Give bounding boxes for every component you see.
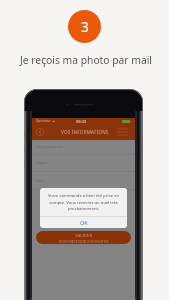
staticText: Votre commande a bien été prise en compt… [44, 193, 123, 211]
staticText: Je reçois ma photo par mail [20, 53, 152, 67]
staticText: 09:23 [76, 119, 87, 124]
button[interactable]: VALIDER [36, 231, 131, 244]
staticText: VALIDER [75, 232, 93, 238]
staticText: Dupont [36, 161, 47, 165]
button[interactable]: Memo [32, 172, 135, 190]
staticText: Memo [36, 179, 45, 183]
staticText: POUR RECEVOIR VOS PHOTOS [59, 239, 109, 244]
staticText: VOS INFORMATIONS [61, 129, 109, 135]
button[interactable]: Retour [36, 128, 44, 136]
staticText: OK [80, 219, 88, 226]
button[interactable]: OK [40, 217, 127, 228]
staticText: dupont@gmail.com [36, 145, 63, 149]
button[interactable]: 3 [68, 10, 101, 43]
staticText: 3 [81, 18, 89, 36]
button[interactable]: Menu [117, 128, 128, 136]
staticText: Opérateur [36, 119, 51, 123]
